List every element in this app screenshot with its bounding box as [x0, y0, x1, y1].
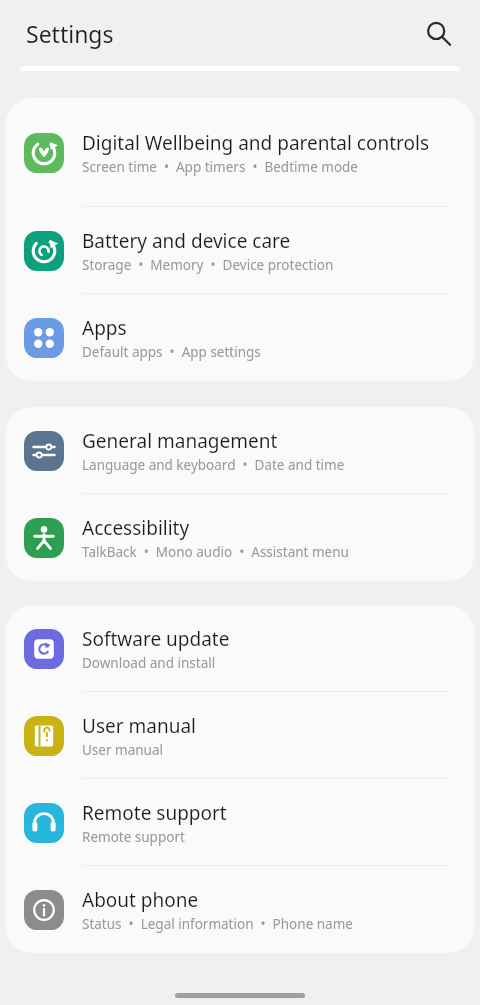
staticText: Remote support — [82, 828, 185, 846]
staticText: Default apps • App settings — [82, 343, 261, 361]
staticText: Battery and device care — [82, 228, 291, 254]
staticText: User manual — [82, 741, 163, 759]
staticText: User manual — [82, 713, 196, 739]
button[interactable]: Software update — [6, 605, 474, 692]
button[interactable]: Search — [416, 11, 460, 55]
button[interactable]: Apps — [6, 294, 474, 381]
staticText: Software update — [82, 626, 230, 652]
staticText: Download and install — [82, 654, 216, 672]
staticText: Status • Legal information • Phone name — [82, 915, 353, 933]
button[interactable]: Remote support — [6, 779, 474, 866]
staticText: Screen time • App timers • Bedtime mode — [82, 158, 358, 176]
button[interactable]: User manual — [6, 692, 474, 779]
staticText: Language and keyboard • Date and time — [82, 456, 345, 474]
staticText: Storage • Memory • Device protection — [82, 256, 334, 274]
staticText: Accessibility — [82, 515, 190, 541]
button[interactable]: About phone — [6, 866, 474, 953]
staticText: About phone — [82, 887, 199, 913]
button[interactable]: Battery and device care — [6, 207, 474, 294]
staticText: Remote support — [82, 800, 227, 826]
staticText: Settings — [26, 18, 114, 49]
button[interactable]: Accessibility — [6, 494, 474, 581]
staticText: Apps — [82, 315, 127, 341]
staticText: TalkBack • Mono audio • Assistant menu — [82, 543, 349, 561]
staticText: General management — [82, 428, 278, 454]
button[interactable]: Digital Wellbeing and parental controls — [6, 98, 474, 207]
staticText: Digital Wellbeing and parental controls — [82, 130, 430, 156]
button[interactable]: General management — [6, 407, 474, 494]
